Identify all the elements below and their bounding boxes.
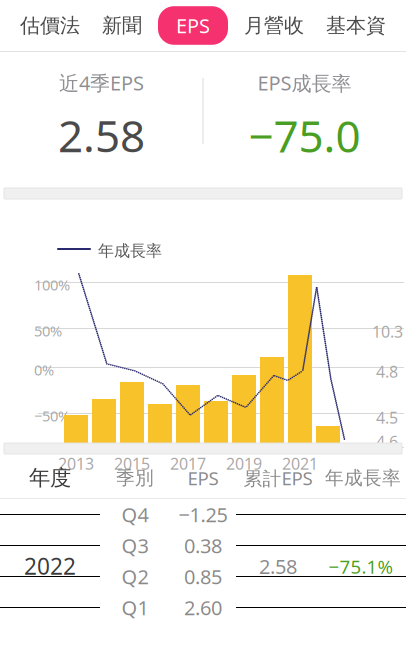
staticText: 2.58 — [259, 553, 297, 580]
staticText: 4.6 — [376, 431, 398, 452]
staticText: −50% — [34, 406, 70, 425]
staticText: 4.8 — [376, 361, 398, 382]
staticText: 月營收 — [244, 13, 304, 38]
staticText: 新聞 — [102, 13, 142, 38]
staticText: 2013 — [58, 453, 94, 474]
button[interactable]: 新聞 — [96, 7, 148, 44]
staticText: 0% — [34, 360, 54, 379]
staticText: Q3 — [121, 532, 148, 559]
staticText: 2015 — [114, 453, 150, 474]
staticText: 0.85 — [184, 563, 222, 590]
staticText: 2019 — [226, 453, 262, 474]
staticText: 2017 — [170, 453, 206, 474]
staticText: EPS成長率 — [257, 69, 351, 96]
staticText: 基本資 — [326, 13, 386, 38]
staticText: 4.5 — [376, 407, 398, 428]
button[interactable]: EPS — [158, 6, 228, 45]
staticText: Q4 — [121, 501, 148, 528]
staticText: EPS — [176, 12, 210, 39]
staticText: 2.60 — [184, 594, 222, 621]
button[interactable]: 月營收 — [238, 7, 310, 44]
staticText: −75.1% — [328, 554, 393, 579]
button[interactable]: 估價法 — [14, 7, 86, 44]
staticText: 50% — [34, 321, 62, 340]
staticText: 估價法 — [20, 13, 80, 38]
staticText: 0.38 — [184, 532, 222, 559]
staticText: Q2 — [121, 563, 148, 590]
staticText: 100% — [34, 275, 70, 294]
staticText: 年成長率 — [98, 241, 162, 261]
staticText: 年度 — [29, 465, 71, 491]
staticText: Q1 — [121, 594, 148, 621]
staticText: 2022 — [24, 551, 76, 581]
staticText: 2.58 — [58, 106, 145, 164]
staticText: −1.25 — [178, 501, 227, 528]
staticText: 年成長率 — [325, 466, 401, 489]
staticText: −75.0 — [248, 106, 360, 164]
staticText: 累計EPS — [243, 466, 312, 490]
button[interactable]: 基本資 — [320, 7, 392, 44]
staticText: 10.3 — [372, 321, 403, 342]
staticText: 2021 — [282, 453, 318, 474]
staticText: 季別 — [116, 466, 154, 489]
staticText: 近4季EPS — [59, 69, 144, 96]
staticText: EPS — [187, 466, 218, 490]
